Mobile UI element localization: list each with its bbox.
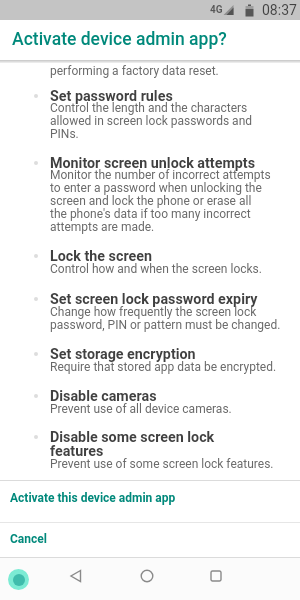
staticText: Prevent use of all device cameras. (50, 402, 232, 416)
staticText: Set storage encryption (50, 346, 196, 363)
button[interactable]: Activate this device admin app (0, 481, 300, 522)
staticText: performing a factory data reset. (50, 64, 219, 78)
staticText: Cancel (10, 532, 47, 546)
staticText: 08:37 (262, 2, 297, 18)
staticText: Control how and when the screen locks. (50, 262, 262, 276)
button[interactable]: Cancel (0, 523, 300, 557)
button[interactable] (135, 564, 159, 588)
staticText: Set screen lock password expiry (50, 291, 258, 308)
button[interactable] (8, 569, 29, 590)
staticText: Disable cameras (50, 388, 157, 405)
staticText: Monitor screen unlock attempts (50, 155, 256, 172)
staticText: Change how frequently the screen lock pa… (50, 305, 281, 332)
staticText: Require that stored app data be encrypte… (50, 360, 277, 374)
staticText: Activate this device admin app (10, 491, 176, 505)
staticText: Set password rules (50, 88, 173, 105)
button[interactable] (64, 564, 88, 588)
staticText: Monitor the number of incorrect attempts… (50, 168, 271, 234)
staticText: Prevent use of some screen lock features… (50, 457, 274, 471)
staticText: Disable some screen lock features (50, 429, 215, 459)
staticText: 4G (210, 4, 223, 16)
staticText: Lock the screen (50, 248, 152, 265)
button[interactable] (204, 564, 228, 588)
staticText: Activate device admin app? (12, 29, 227, 50)
staticText: Control the length and the characters al… (50, 101, 253, 141)
